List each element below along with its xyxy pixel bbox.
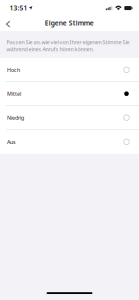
- staticText: Hoch: [7, 66, 20, 73]
- button[interactable]: Hoch: [0, 58, 139, 82]
- button[interactable]: Mittel: [0, 82, 139, 106]
- button[interactable]: Aus: [0, 130, 139, 154]
- staticText: Mittel: [7, 90, 21, 97]
- staticText: Niedrig: [7, 114, 24, 121]
- button[interactable]: Back: [0, 13, 15, 31]
- button[interactable]: Niedrig: [0, 106, 139, 130]
- staticText: Eigene Stimme: [45, 19, 94, 27]
- staticText: 13:51: [9, 3, 27, 12]
- staticText: Aus: [7, 138, 16, 145]
- staticText: Passen Sie an, wie viel von Ihrer eigene…: [7, 39, 130, 53]
